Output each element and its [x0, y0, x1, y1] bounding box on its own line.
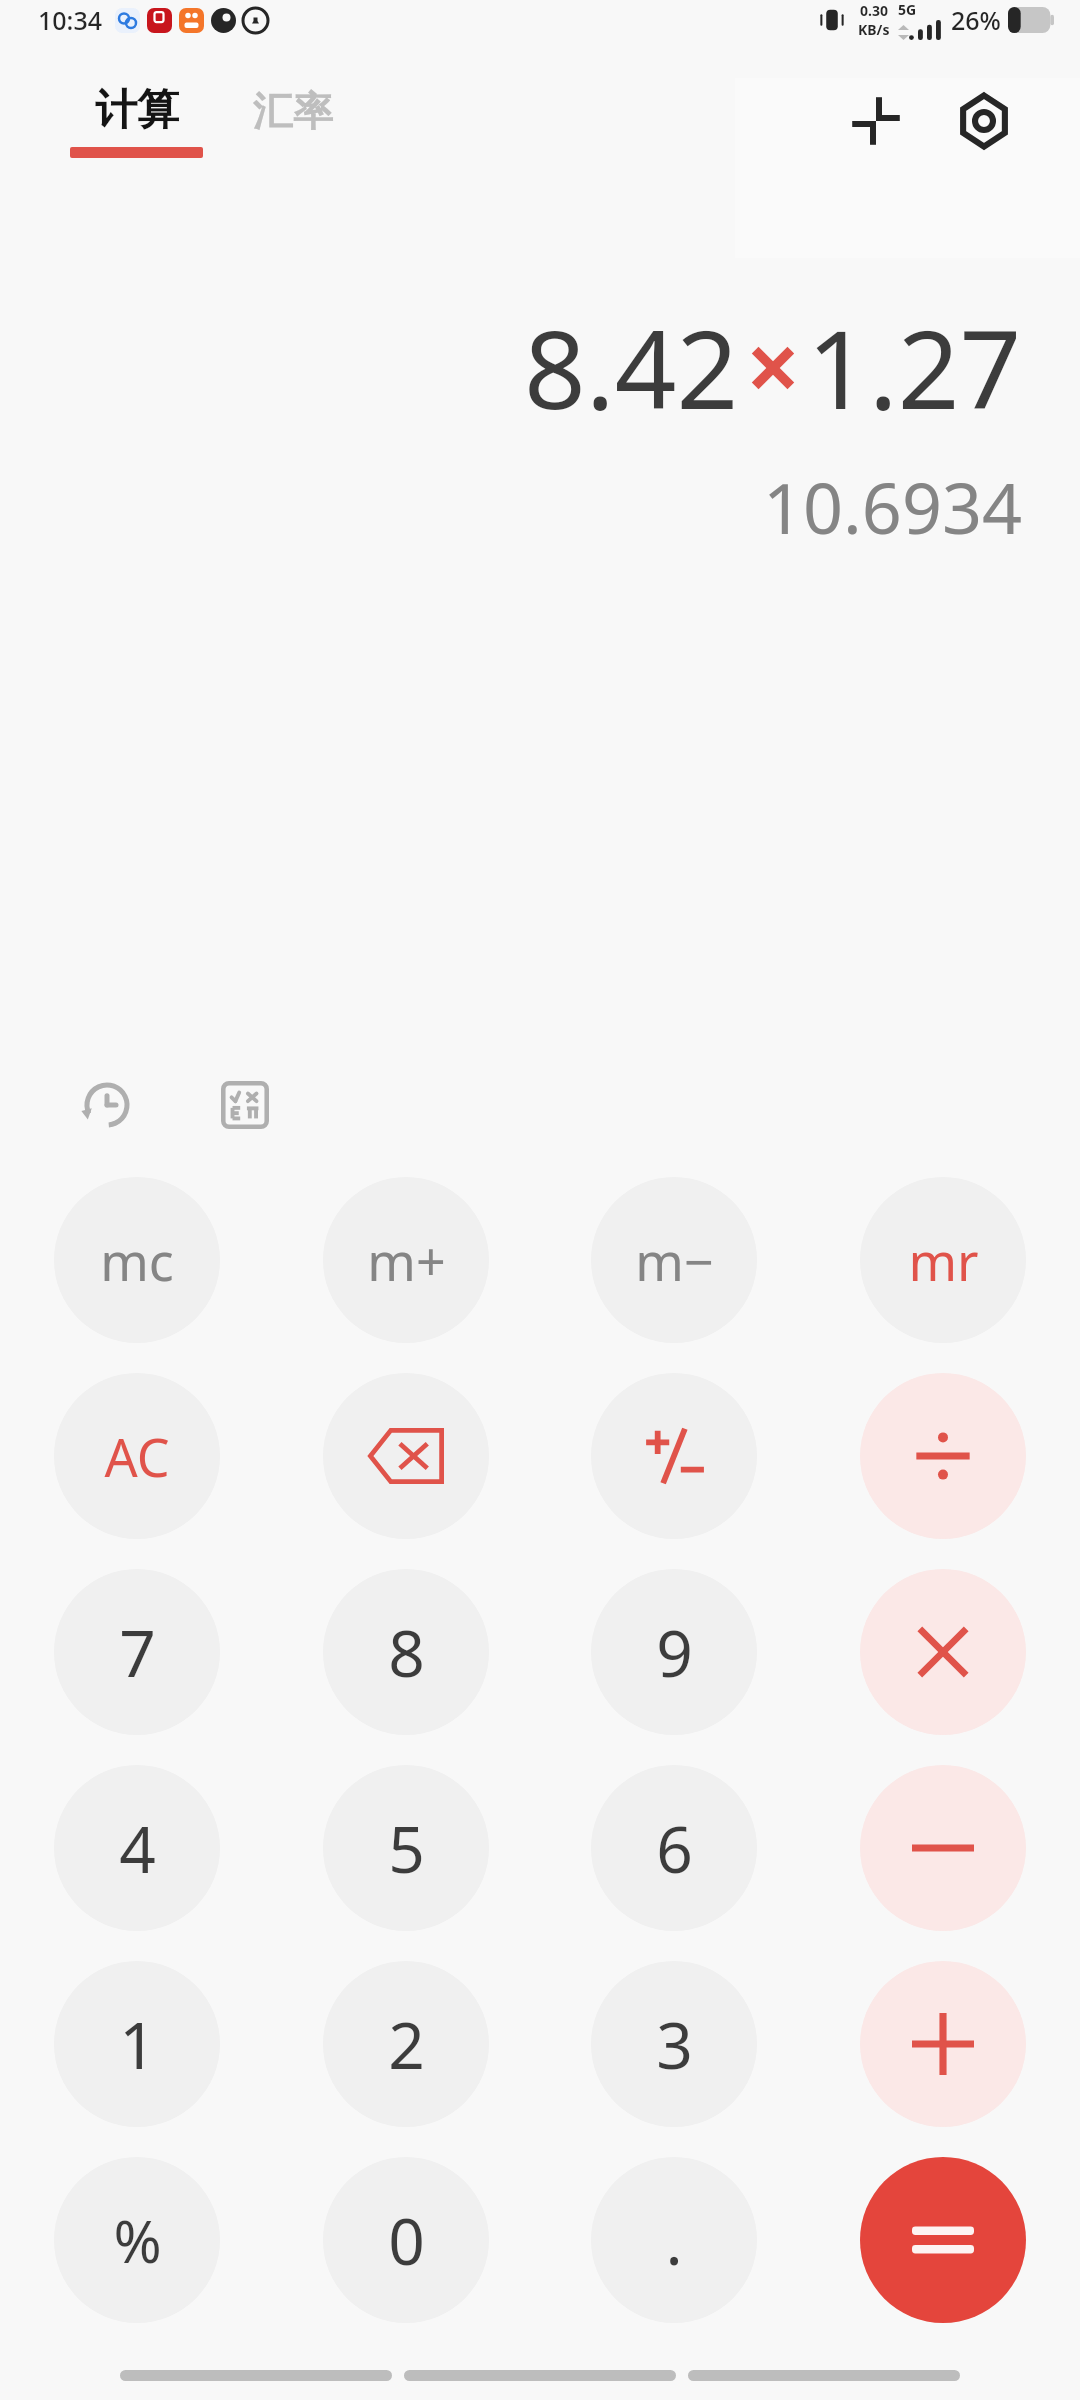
button[interactable]: Backspace: [323, 1373, 489, 1539]
button[interactable]: Settings: [942, 79, 1026, 163]
staticText: 汇率: [253, 86, 333, 136]
button[interactable]: Plus: [860, 1961, 1026, 2127]
staticText: 10:34: [38, 3, 103, 37]
button[interactable]: Equals: [860, 2157, 1026, 2323]
staticText: 26%: [951, 3, 1001, 37]
button[interactable]: Minus: [860, 1765, 1026, 1931]
button[interactable]: m−: [591, 1177, 757, 1343]
button[interactable]: Navigation: [120, 2370, 392, 2381]
staticText: KB/s: [858, 20, 890, 39]
button[interactable]: 3: [591, 1961, 757, 2127]
staticText: 5: [388, 1805, 425, 1892]
button[interactable]: Divide: [860, 1373, 1026, 1539]
staticText: m−: [635, 1225, 714, 1296]
staticText: 2: [388, 2001, 425, 2088]
staticText: 8.42: [524, 294, 739, 441]
button[interactable]: Collapse: [834, 79, 918, 163]
button[interactable]: 2: [323, 1961, 489, 2127]
button[interactable]: mr: [860, 1177, 1026, 1343]
button[interactable]: Scientific functions: [208, 1068, 282, 1142]
button[interactable]: Plus minus: [591, 1373, 757, 1539]
button[interactable]: Navigation: [688, 2370, 960, 2381]
staticText: 5G: [898, 0, 917, 19]
button[interactable]: Navigation: [404, 2370, 676, 2381]
button[interactable]: %: [54, 2157, 220, 2323]
staticText: 1.27: [807, 294, 1022, 441]
staticText: %: [113, 2201, 162, 2280]
button[interactable]: 计算: [68, 78, 205, 164]
staticText: .: [665, 2197, 683, 2284]
button[interactable]: Multiply: [860, 1569, 1026, 1735]
button[interactable]: 8: [323, 1569, 489, 1735]
staticText: mr: [908, 1225, 979, 1296]
button[interactable]: 7: [54, 1569, 220, 1735]
staticText: 6: [656, 1805, 693, 1892]
staticText: 9: [656, 1609, 693, 1696]
button[interactable]: m+: [323, 1177, 489, 1343]
button[interactable]: 汇率: [251, 96, 335, 146]
button[interactable]: 1: [54, 1961, 220, 2127]
staticText: m+: [367, 1225, 446, 1296]
button[interactable]: mc: [54, 1177, 220, 1343]
staticText: 10.6934: [763, 459, 1022, 554]
staticText: AC: [104, 1421, 170, 1492]
button[interactable]: AC: [54, 1373, 220, 1539]
staticText: 0.30: [860, 1, 888, 20]
staticText: mc: [100, 1225, 174, 1296]
staticText: 0: [388, 2197, 425, 2284]
button[interactable]: 0: [323, 2157, 489, 2323]
button[interactable]: 6: [591, 1765, 757, 1931]
staticText: 1: [119, 2001, 156, 2088]
staticText: 8: [388, 1609, 425, 1696]
staticText: 4: [119, 1805, 156, 1892]
staticText: 计算: [95, 84, 179, 137]
button[interactable]: 5: [323, 1765, 489, 1931]
button[interactable]: .: [591, 2157, 757, 2323]
button[interactable]: History: [70, 1068, 144, 1142]
button[interactable]: 9: [591, 1569, 757, 1735]
button[interactable]: 4: [54, 1765, 220, 1931]
staticText: 3: [656, 2001, 693, 2088]
staticText: 7: [119, 1609, 156, 1696]
